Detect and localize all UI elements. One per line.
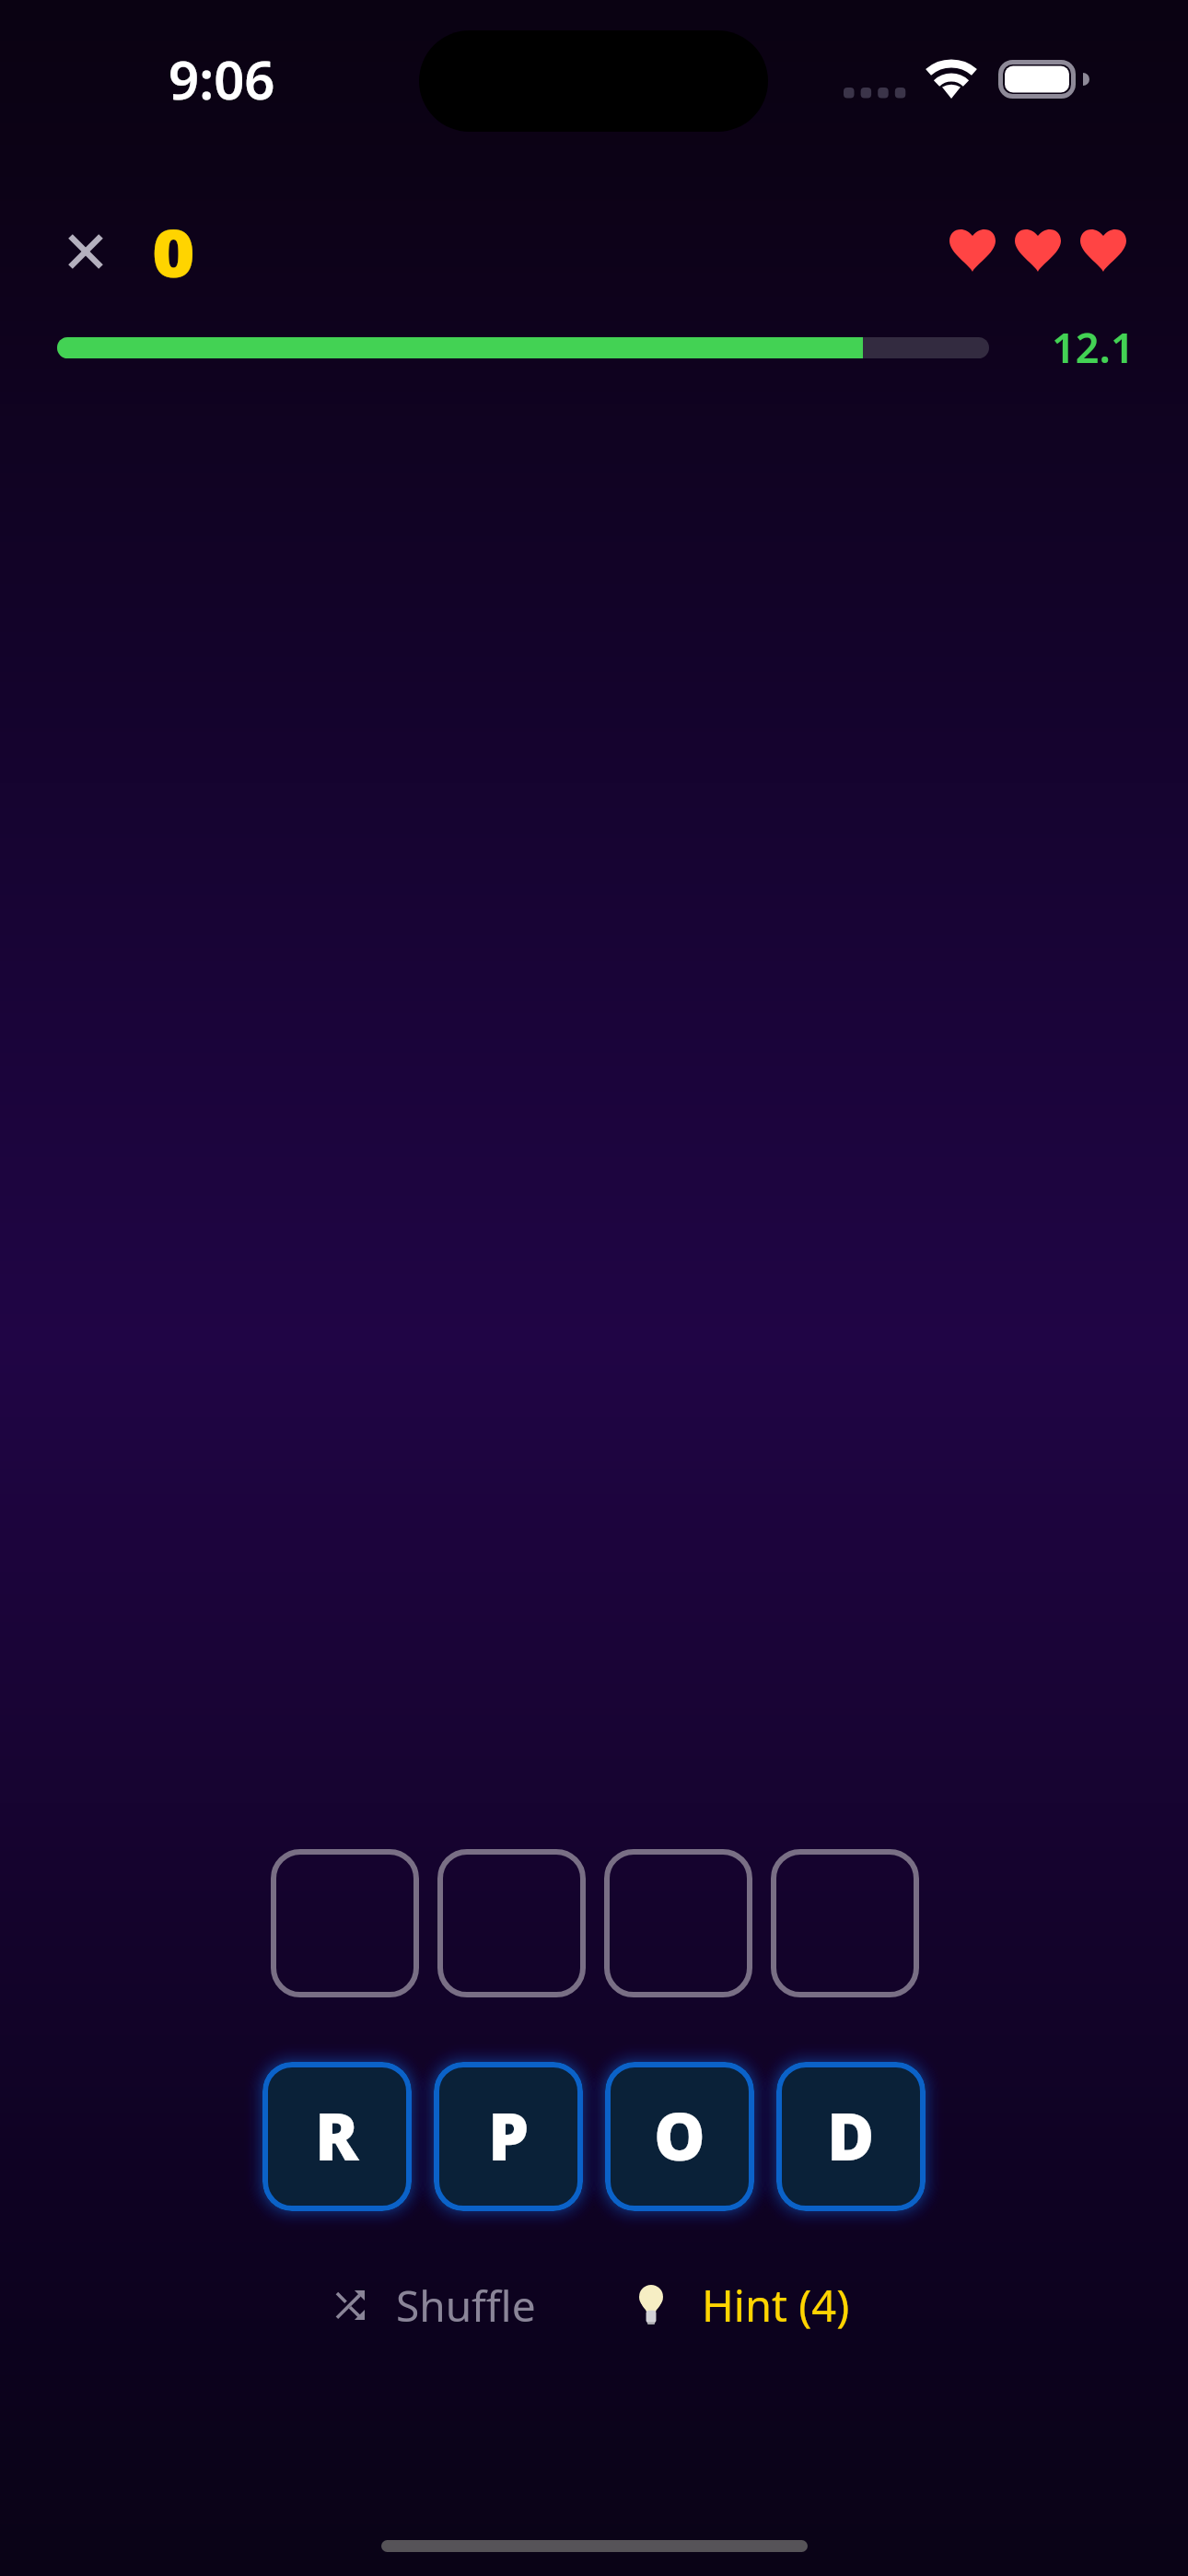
staticText: 0 [152,208,196,296]
staticText: Hint (4) [702,2276,850,2335]
button[interactable]: Letter P [434,2062,583,2211]
staticText: R [315,2091,359,2179]
button[interactable]: Answer slot [437,1849,586,1997]
button[interactable]: Letter D [776,2062,926,2211]
button[interactable]: Answer slot [771,1849,919,1997]
button[interactable]: Shuffle letters [335,2272,536,2338]
button[interactable]: Answer slot [271,1849,419,1997]
staticText: O [654,2091,705,2179]
staticText: D [827,2091,875,2179]
staticText: 12.1 [1052,319,1135,375]
button[interactable]: Use a hint, 4 remaining [639,2272,850,2338]
button[interactable]: Letter O [605,2062,754,2211]
button[interactable]: Answer slot [604,1849,752,1997]
staticText: Shuffle [396,2277,536,2335]
button[interactable]: Letter R [262,2062,412,2211]
staticText: P [488,2091,530,2179]
button[interactable]: Close [50,216,122,287]
staticText: 9:06 [169,42,275,115]
